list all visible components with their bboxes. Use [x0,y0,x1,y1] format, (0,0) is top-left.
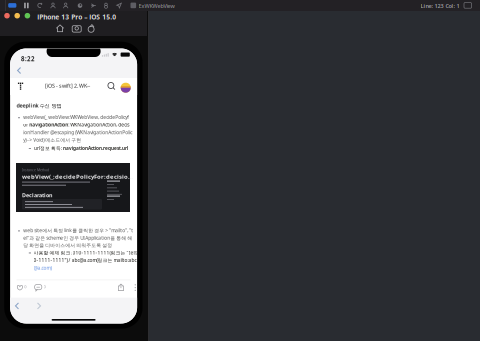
staticText: webView(_:decidePolicyFor:decisionHandle… [22,172,136,180]
button[interactable]: Comment [32,280,52,294]
button[interactable]: Screenshot [72,24,82,33]
button[interactable]: Search [107,82,118,93]
staticText: or navigationAction: WKNavigationAction,… [23,121,129,128]
staticText: 0 [44,284,46,289]
staticText: el"과 같은 scheme인 경우 UIApplication을 통해 해 [23,235,132,241]
staticText: 0-1111-1111") / abc@a.com(링크는 mailto:abc [33,257,136,263]
button[interactable]: Back [13,63,35,77]
staticText: iPhone 13 Pro – iOS 15.0 [37,12,116,21]
staticText: 사용할 예제 링크: 010-1111-1111(링크는 "tel:01 [33,249,141,256]
staticText: 8:22 [21,55,35,63]
button[interactable]: Home [56,24,65,33]
button[interactable]: Forward [32,298,54,314]
staticText: ExWKWebView [138,2,174,9]
staticText: y) -> Void) 메소드에서 구현 [23,137,81,143]
staticText: web site에서 특정 link를 클릭한 경우 > "mailto", "… [23,227,133,234]
staticText: 0 [24,284,26,289]
button[interactable]: Rotate [87,24,96,33]
staticText: @a.com) [33,265,51,271]
staticText: deeplink 수신 방법 [16,102,61,109]
staticText: Instance Method [22,167,49,172]
button[interactable]: More [131,280,140,294]
staticText: Declaration [22,191,52,199]
button[interactable]: Share [116,280,128,294]
button[interactable]: Tistory [15,79,29,92]
button[interactable]: Like [14,280,32,294]
button[interactable]: Profile [121,83,131,93]
staticText: Line: 123 Col: 1 [420,2,459,9]
staticText: [iOS - swift] 2. WK··· [45,82,90,89]
button[interactable]: Back [10,298,32,314]
staticText: webView(_ webView:WKWebView, decidePolic… [23,114,129,120]
staticText: 당 화면을 디바이스에서 띄워주도록 설정 [23,242,112,248]
staticText: ionHandler @escaping (WKNavigationAction… [23,129,132,136]
staticText: url정보 획득: navigationAction.request.url [34,145,128,151]
